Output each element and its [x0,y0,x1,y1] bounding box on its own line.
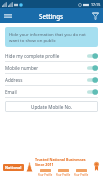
staticText: 17:15 [91,2,101,7]
staticText: Trusted National Businesses Since 2011 [35,157,92,167]
staticText: Your Profile [38,173,53,176]
button[interactable]: Email [0,86,103,98]
staticText: Mobile number [5,65,39,71]
button[interactable]: Award [93,161,100,172]
staticText: Email [5,89,17,95]
staticText: Your Profile [74,173,89,176]
staticText: Your Profile [56,173,71,176]
staticText: Hide my complete profile [5,53,60,59]
button[interactable]: Update Mobile No. [5,101,98,112]
button[interactable]: Mobile number [0,62,103,74]
staticText: National [5,165,22,170]
button[interactable]: Open navigation menu [0,8,15,23]
button[interactable]: Address [0,74,103,86]
button[interactable]: Hide my complete profile [0,50,103,62]
staticText: Update Mobile No. [31,104,73,110]
button[interactable]: Filter [88,8,103,23]
staticText: Address [5,77,23,83]
staticText: Hide your information that you do not wa… [9,31,94,43]
staticText: Settings [39,12,64,20]
